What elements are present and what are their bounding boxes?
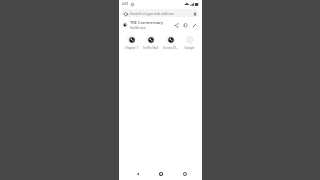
staticText: TRE Commentary xyxy=(130,20,164,25)
staticText: 4:41 xyxy=(122,2,129,6)
button[interactable]: Chapter 1 xyxy=(122,34,141,51)
staticText: Truffle Shuf xyxy=(141,46,160,50)
button[interactable]: I know I'll... xyxy=(161,34,180,51)
button[interactable]: Google xyxy=(180,34,199,51)
button[interactable]: Search or type web address xyxy=(122,9,199,17)
staticText: Google xyxy=(180,46,199,50)
button[interactable]: Truffle Shuf xyxy=(141,34,160,51)
button[interactable]: Copy link xyxy=(181,21,190,30)
button[interactable]: Home xyxy=(155,168,166,179)
staticText: I know I'll... xyxy=(161,46,180,50)
staticText: Reddit.com xyxy=(130,26,146,30)
button[interactable]: Recent apps xyxy=(179,168,190,179)
button[interactable]: Share xyxy=(172,21,181,30)
staticText: Search or type web address xyxy=(130,11,193,16)
button[interactable]: Edit xyxy=(190,21,199,30)
staticText: Chapter 1 xyxy=(122,46,141,50)
button[interactable]: Back xyxy=(132,168,143,179)
